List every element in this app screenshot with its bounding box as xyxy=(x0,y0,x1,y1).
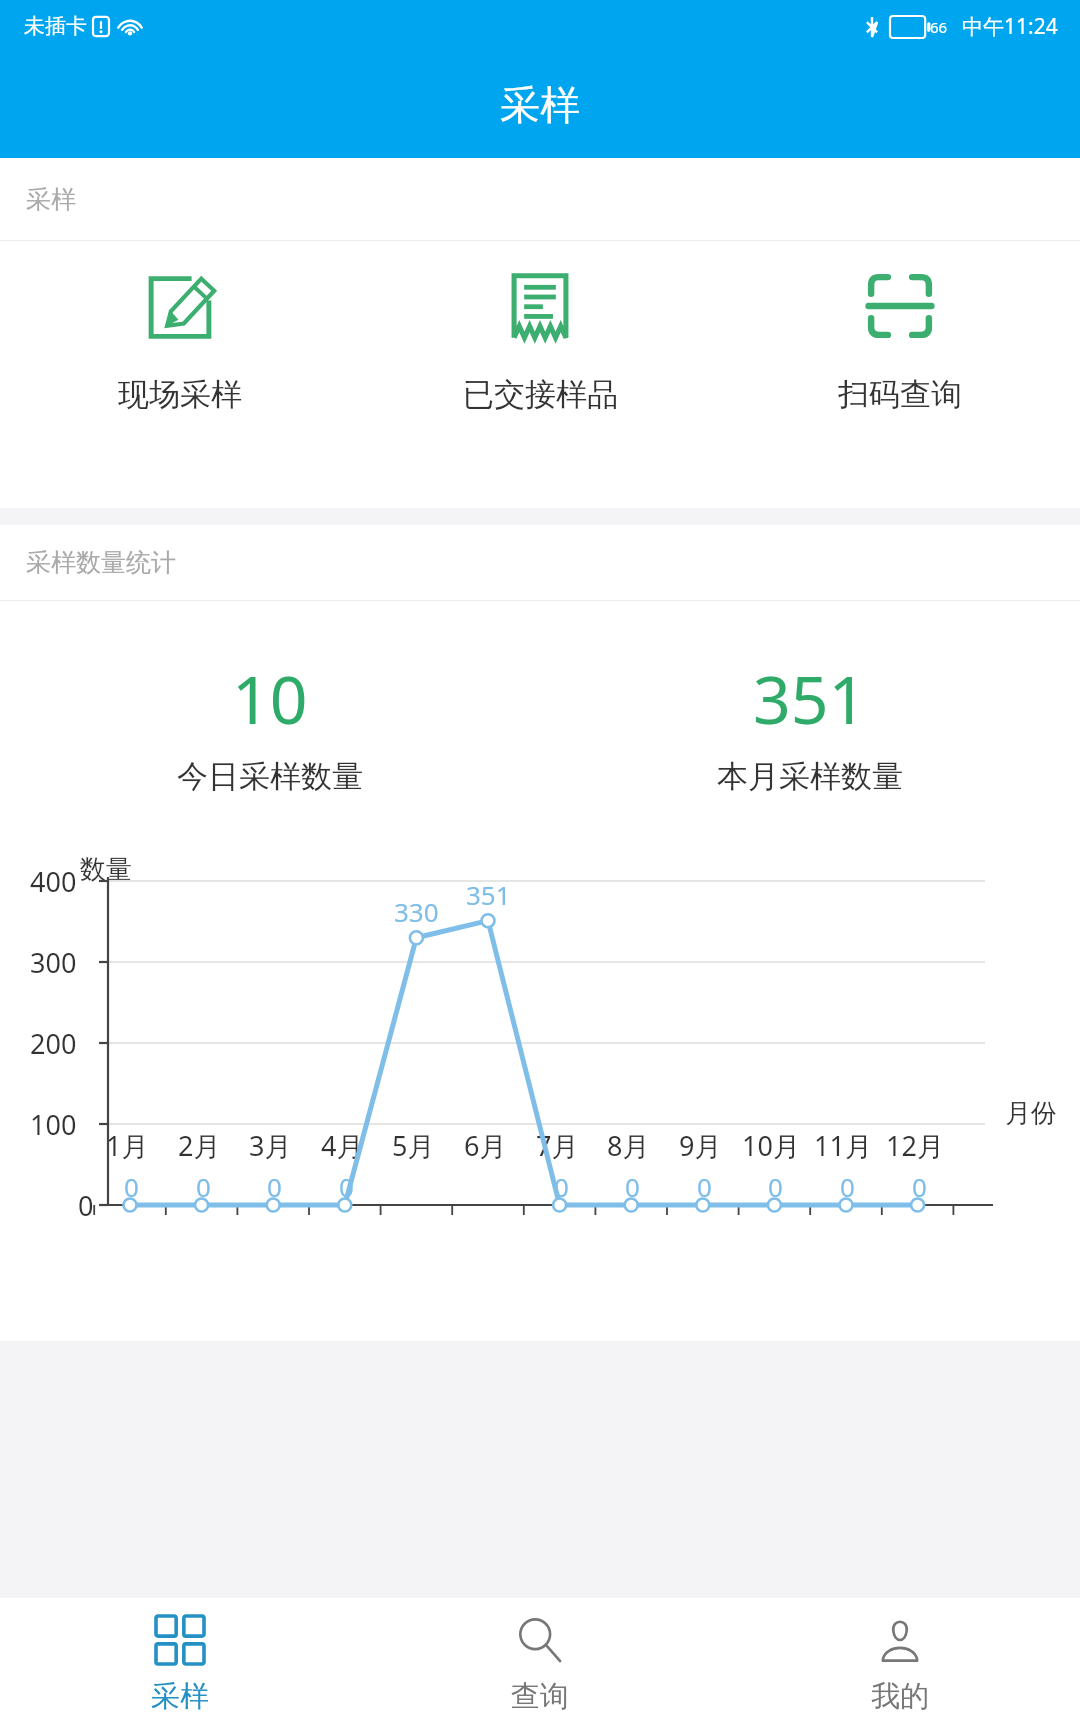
staticText: 未插卡 xyxy=(24,13,87,39)
button[interactable]: 现场采样 xyxy=(0,241,360,508)
staticText: 采样数量统计 xyxy=(26,547,176,578)
other: 我的 xyxy=(876,1616,924,1664)
staticText: 1月 xyxy=(106,1127,149,1164)
staticText: 0 xyxy=(78,1187,94,1224)
staticText: 66 xyxy=(930,17,948,37)
staticText: 数量 xyxy=(80,853,132,886)
staticText: 351 xyxy=(753,653,867,743)
staticText: 100 xyxy=(30,1106,77,1143)
button[interactable]: 已交接样品 xyxy=(360,241,720,508)
staticText: 8月 xyxy=(607,1127,650,1164)
button[interactable]: 采样 xyxy=(0,1598,360,1728)
staticText: 2月 xyxy=(178,1127,221,1164)
staticText: 已交接样品 xyxy=(463,375,618,414)
staticText: 0 xyxy=(124,1169,139,1204)
staticText: 查询 xyxy=(511,1678,569,1715)
staticText: 0 xyxy=(196,1169,211,1204)
staticText: 4月 xyxy=(321,1127,364,1164)
button[interactable]: 351 xyxy=(540,601,1080,831)
staticText: 6月 xyxy=(464,1127,507,1164)
staticText: 400 xyxy=(30,863,77,900)
staticText: 扫码查询 xyxy=(838,375,962,414)
staticText: 采样 xyxy=(151,1678,209,1715)
staticText: 330 xyxy=(394,894,439,929)
button[interactable]: 查询 xyxy=(360,1598,720,1728)
button[interactable]: 我的 xyxy=(720,1598,1080,1728)
staticText: 351 xyxy=(466,877,511,912)
staticText: 11月 xyxy=(814,1127,872,1164)
staticText: 10月 xyxy=(742,1127,800,1164)
staticText: 10 xyxy=(232,653,308,743)
staticText: 0 xyxy=(267,1169,282,1204)
staticText: 0 xyxy=(768,1169,783,1204)
staticText: 本月采样数量 xyxy=(717,757,903,796)
staticText: 采样 xyxy=(500,80,580,130)
button[interactable]: 10 xyxy=(0,601,540,831)
staticText: 0 xyxy=(697,1169,712,1204)
staticText: 0 xyxy=(625,1169,640,1204)
staticText: 7月 xyxy=(536,1127,579,1164)
staticText: 采样 xyxy=(26,184,76,215)
staticText: 0 xyxy=(840,1169,855,1204)
staticText: 0 xyxy=(912,1169,927,1204)
staticText: 今日采样数量 xyxy=(177,757,363,796)
staticText: 200 xyxy=(30,1025,77,1062)
staticText: 我的 xyxy=(871,1678,929,1715)
staticText: 中午11:24 xyxy=(962,12,1058,41)
staticText: 9月 xyxy=(679,1127,722,1164)
other: 查询 xyxy=(516,1616,564,1664)
staticText: 5月 xyxy=(392,1127,435,1164)
staticText: 月份 xyxy=(1005,1097,1057,1130)
staticText: 300 xyxy=(30,944,77,981)
other: 采样 xyxy=(156,1616,204,1664)
staticText: 现场采样 xyxy=(118,375,242,414)
staticText: 0 xyxy=(339,1169,354,1204)
staticText: 3月 xyxy=(249,1127,292,1164)
button[interactable]: 扫码查询 xyxy=(720,241,1080,508)
staticText: 0 xyxy=(554,1169,569,1204)
staticText: 12月 xyxy=(886,1127,944,1164)
